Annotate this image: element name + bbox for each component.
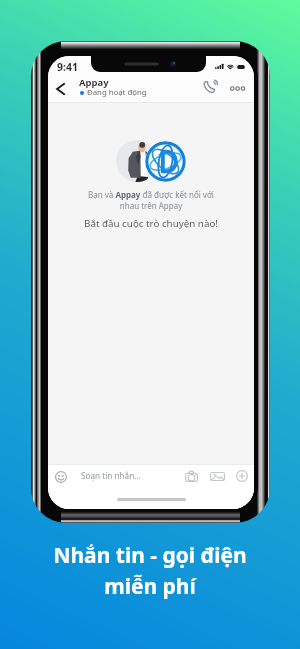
staticText: Bắt đầu cuộc trò chuyện nào! — [48, 217, 254, 230]
button[interactable]: Voice call — [198, 75, 222, 99]
button[interactable]: Emoji — [50, 464, 72, 486]
button[interactable]: Photo gallery — [206, 464, 229, 486]
button[interactable]: More options — [227, 77, 249, 100]
button[interactable]: Camera — [181, 464, 203, 486]
staticText: Nhắn tin - gọi điện miễn phí — [0, 541, 300, 600]
button[interactable]: Add attachment — [232, 464, 252, 486]
staticText: 9:41 — [57, 60, 78, 74]
staticText: Appay — [79, 76, 109, 89]
staticText: Soạn tin nhắn... — [81, 470, 141, 481]
staticText: Bạn và Appay đã được kết nối với nhau tr… — [48, 189, 254, 211]
staticText: Đang hoạt động — [87, 87, 147, 98]
button[interactable]: Back — [49, 77, 72, 100]
